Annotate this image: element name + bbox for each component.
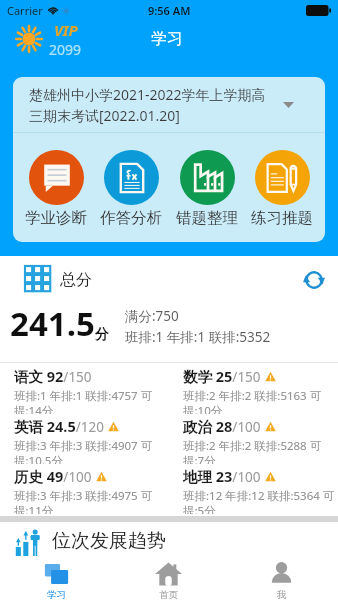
- staticText: Carrier: [7, 3, 43, 18]
- staticText: 历史 49/100: [14, 466, 92, 486]
- button[interactable]: 历史 49/100: [0, 463, 169, 513]
- button[interactable]: 首页: [112, 556, 225, 600]
- staticText: 我: [277, 589, 287, 600]
- staticText: 提:10分: [183, 403, 223, 414]
- staticText: 语文 92/150: [14, 366, 92, 386]
- staticText: 提:10.5分: [14, 453, 63, 464]
- button[interactable]: 数学 25/150: [169, 363, 338, 413]
- staticText: 政治 28/100: [183, 416, 261, 436]
- staticText: 241.5: [10, 301, 95, 346]
- other: Select exam: [283, 102, 294, 108]
- button[interactable]: 我: [225, 556, 338, 600]
- staticText: 班排:3 年排:3 联排:4907 可: [14, 438, 153, 454]
- staticText: 提:7分: [183, 453, 216, 464]
- staticText: 班排:2 年排:2 联排:5163 可: [183, 388, 322, 404]
- staticText: 地理 23/100: [183, 466, 261, 486]
- staticText: 班排:1 年排:1 联排:4757 可: [14, 388, 153, 404]
- button[interactable]: Refresh: [302, 268, 326, 292]
- staticText: 2099: [49, 40, 82, 58]
- other: VIP level: [15, 25, 43, 53]
- button[interactable]: 学业诊断: [19, 133, 93, 228]
- staticText: VIP: [54, 20, 78, 40]
- staticText: 提:11分: [14, 503, 54, 514]
- button[interactable]: 学习: [0, 556, 112, 600]
- button[interactable]: 练习推题: [245, 133, 319, 228]
- staticText: 学业诊断: [25, 208, 87, 228]
- button[interactable]: 地理 23/100: [169, 463, 338, 513]
- button[interactable]: 英语 24.5/120: [0, 413, 169, 463]
- staticText: 位次发展趋势: [52, 529, 166, 553]
- staticText: 英语 24.5/120: [14, 416, 104, 436]
- staticText: 班排:2 年排:2 联排:5288 可: [183, 438, 322, 454]
- staticText: 提:5分: [183, 503, 216, 514]
- button[interactable]: 作答分析: [94, 133, 168, 228]
- staticText: 班排:1 年排:1 联排:5352: [125, 328, 271, 346]
- button[interactable]: 语文 92/150: [0, 363, 169, 413]
- staticText: 错题整理: [176, 208, 238, 228]
- staticText: 分: [95, 326, 109, 344]
- staticText: 作答分析: [100, 208, 162, 228]
- staticText: 班排:12 年排:12 联排:5364 可: [183, 488, 335, 504]
- staticText: 班排:3 年排:3 联排:4975 可: [14, 488, 153, 504]
- staticText: 首页: [159, 589, 178, 600]
- staticText: 楚雄州中小学2021-2022学年上学期高三期末考试[2022.01.20]: [29, 85, 276, 125]
- staticText: 数学 25/150: [183, 366, 261, 386]
- button[interactable]: 错题整理: [170, 133, 244, 228]
- staticText: 提:14分: [14, 403, 54, 414]
- other: Rank trend: [10, 526, 44, 556]
- button[interactable]: 政治 28/100: [169, 413, 338, 463]
- staticText: 练习推题: [251, 208, 313, 228]
- staticText: 总分: [60, 270, 92, 290]
- staticText: 学习: [47, 589, 66, 600]
- button[interactable]: VIP level: [15, 20, 82, 58]
- staticText: 满分:750: [125, 307, 179, 325]
- staticText: 9:56 AM: [148, 3, 191, 18]
- staticText: 学习: [151, 29, 183, 49]
- button[interactable]: 楚雄州中小学2021-2022学年上学期高三期末考试[2022.01.20]: [29, 77, 314, 132]
